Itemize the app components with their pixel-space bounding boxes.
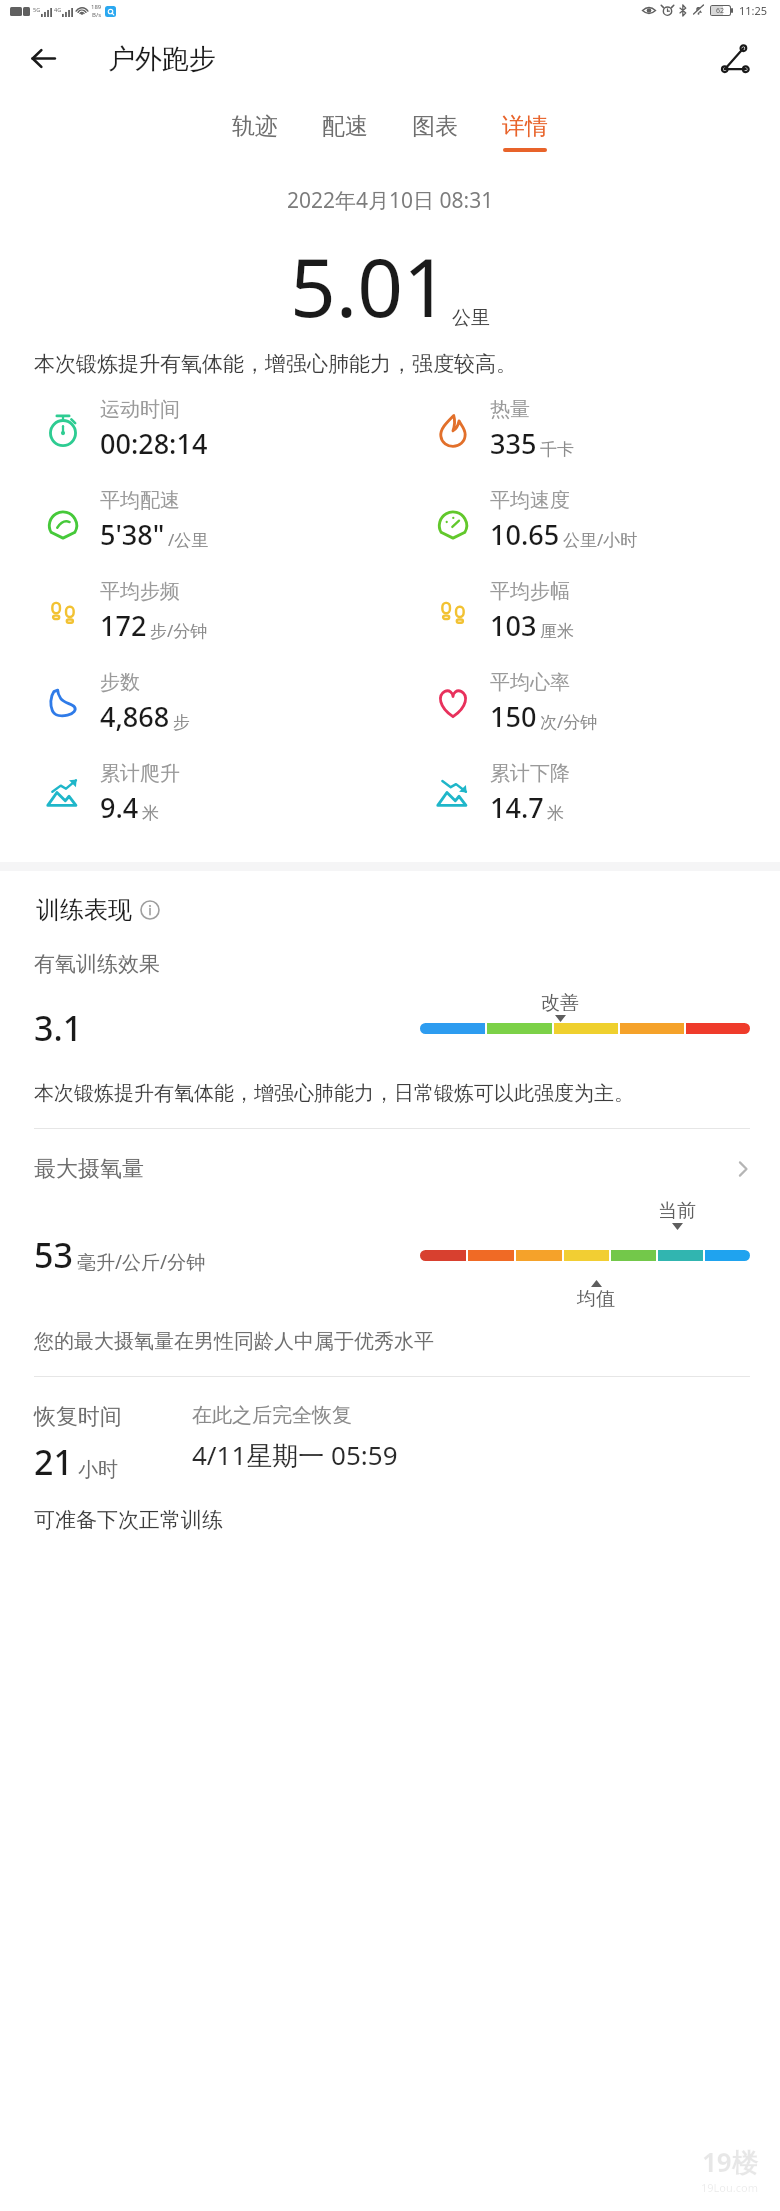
staticText: 335 — [490, 425, 537, 462]
button[interactable]: 热量 — [390, 395, 780, 464]
button[interactable]: 轨迹 — [210, 106, 300, 158]
button[interactable]: 累计爬升 — [0, 759, 390, 828]
staticText: 4,868 — [100, 698, 170, 735]
staticText: 小时 — [78, 1457, 118, 1482]
staticText: 运动时间 — [100, 397, 180, 422]
staticText: 9.4 — [100, 789, 139, 826]
staticText: 5.01 — [290, 231, 449, 340]
staticText: 19楼 — [702, 2144, 758, 2180]
button[interactable]: 步数 — [0, 668, 390, 737]
staticText: 可准备下次正常训练 — [34, 1507, 223, 1533]
staticText: 当前 — [658, 1199, 696, 1223]
button[interactable]: 分享 — [712, 36, 758, 82]
staticText: 次/分钟 — [540, 710, 598, 733]
staticText: 步 — [173, 712, 190, 733]
staticText: 毫升/公斤/分钟 — [77, 1249, 206, 1275]
button[interactable]: 累计下降 — [390, 759, 780, 828]
staticText: 公里/小时 — [563, 528, 638, 551]
staticText: 详情 — [502, 112, 548, 141]
staticText: 11:25 — [739, 3, 768, 18]
staticText: 配速 — [322, 112, 368, 141]
staticText: 189 — [91, 3, 102, 11]
button[interactable]: 训练表现 — [34, 893, 162, 927]
staticText: 公里 — [452, 306, 490, 330]
staticText: 米 — [547, 803, 564, 824]
staticText: 累计爬升 — [100, 761, 180, 786]
staticText: 千卡 — [540, 439, 574, 460]
button[interactable]: 图表 — [390, 106, 480, 158]
staticText: 图表 — [412, 112, 458, 141]
staticText: 本次锻炼提升有氧体能，增强心肺能力，强度较高。 — [34, 351, 750, 377]
staticText: 有氧训练效果 — [34, 951, 160, 977]
staticText: 21 — [34, 1439, 73, 1485]
button[interactable]: 详情 — [480, 106, 570, 158]
button[interactable]: 运动时间 — [0, 395, 390, 464]
button[interactable]: 平均配速 — [0, 486, 390, 555]
staticText: 本次锻炼提升有氧体能，增强心肺能力，日常锻炼可以此强度为主。 — [34, 1081, 634, 1106]
staticText: 改善 — [541, 991, 579, 1015]
staticText: 最大摄氧量 — [34, 1155, 144, 1183]
staticText: 累计下降 — [490, 761, 570, 786]
staticText: 5G — [33, 6, 41, 13]
button[interactable]: 返回 — [20, 37, 67, 80]
staticText: 14.7 — [490, 789, 544, 826]
button[interactable]: 平均速度 — [390, 486, 780, 555]
staticText: 5'38" — [100, 516, 165, 553]
staticText: 厘米 — [540, 621, 574, 642]
staticText: 平均步频 — [100, 579, 180, 604]
staticText: 172 — [100, 607, 147, 644]
staticText: 150 — [490, 698, 537, 735]
staticText: 19Lou.com — [701, 2180, 758, 2195]
staticText: 户外跑步 — [108, 42, 216, 76]
staticText: 10.65 — [490, 516, 560, 553]
button[interactable]: 平均步幅 — [390, 577, 780, 646]
staticText: 恢复时间 — [34, 1403, 122, 1431]
staticText: 训练表现 — [36, 895, 132, 925]
staticText: 平均配速 — [100, 488, 180, 513]
staticText: /公里 — [168, 528, 209, 551]
staticText: 均值 — [577, 1287, 615, 1311]
staticText: 62 — [716, 6, 725, 15]
staticText: 3.1 — [34, 1005, 83, 1051]
staticText: 在此之后完全恢复 — [192, 1403, 352, 1428]
button[interactable]: 配速 — [300, 106, 390, 158]
button[interactable]: 最大摄氧量 — [0, 1155, 780, 1183]
staticText: 步/分钟 — [150, 619, 208, 642]
staticText: 103 — [490, 607, 537, 644]
button[interactable]: 平均步频 — [0, 577, 390, 646]
staticText: 步数 — [100, 670, 140, 695]
staticText: 4G — [54, 6, 62, 13]
staticText: 轨迹 — [232, 112, 278, 141]
staticText: 53 — [34, 1232, 73, 1278]
staticText: 2022年4月10日 08:31 — [287, 186, 494, 215]
staticText: 4/11星期一 05:59 — [192, 1437, 398, 1473]
staticText: 平均步幅 — [490, 579, 570, 604]
other: 查看最大摄氧量 — [732, 1158, 754, 1180]
other: 说明 — [140, 900, 160, 920]
staticText: 您的最大摄氧量在男性同龄人中属于优秀水平 — [34, 1329, 434, 1354]
button[interactable]: 平均心率 — [390, 668, 780, 737]
staticText: 平均心率 — [490, 670, 570, 695]
staticText: 热量 — [490, 397, 530, 422]
staticText: 平均速度 — [490, 488, 570, 513]
staticText: 00:28:14 — [100, 425, 208, 462]
staticText: B/s — [92, 11, 102, 19]
staticText: 米 — [142, 803, 159, 824]
